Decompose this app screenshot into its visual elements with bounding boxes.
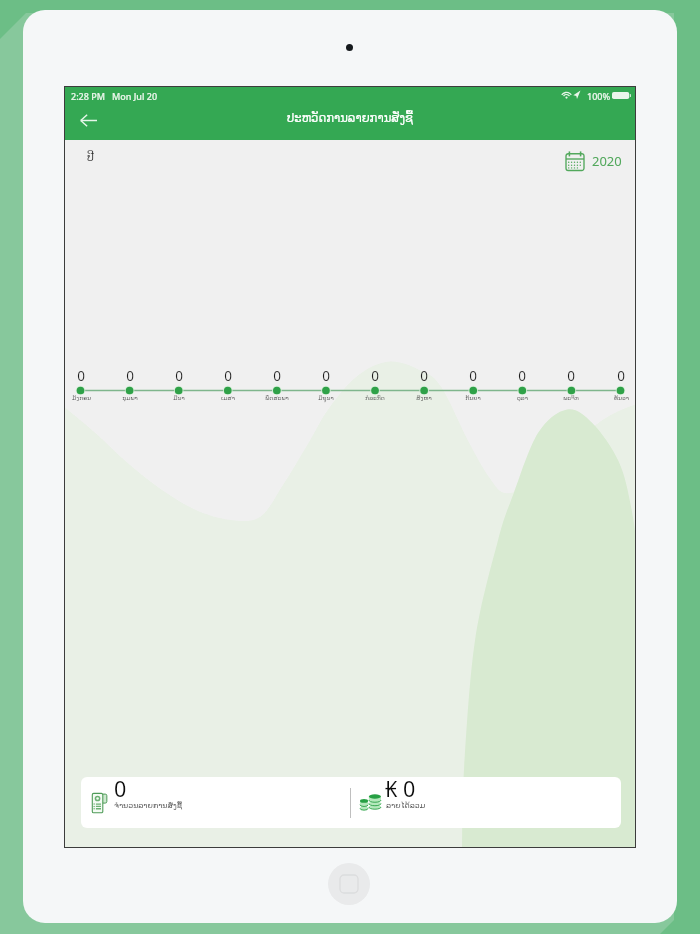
staticText: ພຶດສະພາ xyxy=(265,394,289,401)
staticText: ພະຈິກ xyxy=(563,394,579,401)
staticText: ກຸມພາ xyxy=(122,394,138,401)
staticText: ປະຫວັດການລາຍການສັ່ງຊື້ xyxy=(287,111,413,125)
staticText: ມີນາ xyxy=(173,394,185,401)
staticText: 0 xyxy=(224,367,232,385)
button[interactable]: 2020 xyxy=(565,149,622,169)
staticText: 0 xyxy=(420,367,428,385)
staticText: ສິງຫາ xyxy=(416,394,432,401)
staticText: 0 xyxy=(114,777,127,803)
staticText: ທັນວາ xyxy=(614,394,629,401)
staticText: 0 xyxy=(175,367,183,385)
staticText: 0 xyxy=(617,367,625,385)
staticText: 100% xyxy=(587,90,611,102)
staticText: 0 xyxy=(469,367,477,385)
staticText: ₭ 0 xyxy=(385,777,416,803)
staticText: ຈຳນວນລາຍການສັ່ງຊື້ xyxy=(114,801,183,810)
button[interactable]: ₭ 0 xyxy=(351,777,620,828)
staticText: ກັນຍາ xyxy=(465,394,481,401)
staticText: ມັງກອນ xyxy=(72,394,91,401)
staticText: 0 xyxy=(77,367,85,385)
staticText: ເມສາ xyxy=(221,394,235,401)
staticText: ກໍລະກົດ xyxy=(365,394,385,401)
staticText: ມິຖຸນາ xyxy=(318,394,334,401)
staticText: 0 xyxy=(567,367,575,385)
staticText: 2:28 PM Mon Jul 20 xyxy=(71,90,158,102)
staticText: 0 xyxy=(371,367,379,385)
staticText: ຕຸລາ xyxy=(517,394,528,401)
staticText: 2020 xyxy=(592,152,622,170)
staticText: 0 xyxy=(322,367,330,385)
staticText: 0 xyxy=(518,367,526,385)
staticText: 0 xyxy=(126,367,134,385)
button[interactable]: Home xyxy=(328,863,370,905)
staticText: 0 xyxy=(273,367,281,385)
button[interactable]: 0 xyxy=(81,777,366,828)
staticText: ລາຍໄດ້ລວມ xyxy=(386,801,426,810)
staticText: ປີ xyxy=(87,151,94,164)
button[interactable]: Back xyxy=(73,105,103,135)
